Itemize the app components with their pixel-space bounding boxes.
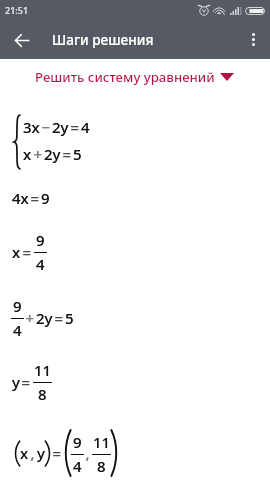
staticText: 11 xyxy=(93,432,111,452)
staticText: + xyxy=(32,144,44,164)
button[interactable]: More options xyxy=(236,22,270,56)
button[interactable]: Решить систему уравнений xyxy=(0,65,270,89)
staticText: 5 xyxy=(65,308,74,328)
staticText: 8 xyxy=(38,384,47,404)
staticText: 2y xyxy=(52,117,69,137)
staticText: x xyxy=(20,443,29,463)
staticText: = xyxy=(51,443,63,463)
staticText: 4x xyxy=(12,188,29,208)
staticText: 4 xyxy=(13,320,22,340)
staticText: , xyxy=(29,443,37,463)
staticText: + xyxy=(32,144,44,164)
staticText: Шаги решения xyxy=(52,30,154,49)
staticText: , xyxy=(29,443,37,463)
button[interactable]: Back xyxy=(5,23,39,57)
staticText: 9 xyxy=(13,296,22,316)
staticText: 2y xyxy=(36,308,53,328)
staticText: + xyxy=(24,308,36,328)
staticText: 11 xyxy=(34,360,52,380)
staticText: = xyxy=(53,308,65,328)
staticText: 5 xyxy=(73,144,82,164)
staticText: = xyxy=(69,117,81,137)
staticText: 4 xyxy=(73,456,82,476)
staticText: 9 xyxy=(36,230,45,250)
staticText: = xyxy=(69,117,81,137)
staticText: = xyxy=(53,308,65,328)
staticText: 9 xyxy=(73,432,82,452)
staticText: x xyxy=(20,443,29,463)
staticText: 4x xyxy=(12,188,29,208)
staticText: 4 xyxy=(81,117,90,137)
staticText: x xyxy=(12,242,21,262)
staticText: = xyxy=(61,144,73,164)
staticText: x xyxy=(12,242,21,262)
staticText: = xyxy=(21,242,33,262)
staticText: x xyxy=(23,144,32,164)
staticText: , xyxy=(84,443,92,463)
staticText: = xyxy=(20,372,32,392)
staticText: x xyxy=(23,144,32,164)
staticText: − xyxy=(40,117,52,137)
staticText: 11 xyxy=(34,360,52,380)
staticText: y xyxy=(37,443,45,463)
staticText: 2y xyxy=(44,144,61,164)
staticText: = xyxy=(61,144,73,164)
staticText: 8 xyxy=(38,384,47,404)
staticText: = xyxy=(20,372,32,392)
staticText: 5 xyxy=(65,308,74,328)
staticText: , xyxy=(84,443,92,463)
staticText: 9 xyxy=(41,188,50,208)
staticText: 2y xyxy=(36,308,53,328)
staticText: 9 xyxy=(41,188,50,208)
staticText: 3x xyxy=(23,117,40,137)
staticText: 3x xyxy=(23,117,40,137)
staticText: − xyxy=(40,117,52,137)
staticText: 21:51 xyxy=(5,4,29,16)
staticText: y xyxy=(37,443,45,463)
staticText: Решить систему уравнений xyxy=(35,68,215,86)
staticText: 2y xyxy=(52,117,69,137)
staticText: 4 xyxy=(36,254,45,274)
staticText: y xyxy=(12,372,20,392)
staticText: = xyxy=(29,188,41,208)
staticText: = xyxy=(29,188,41,208)
staticText: 9 xyxy=(73,432,82,452)
staticText: 9 xyxy=(13,296,22,316)
staticText: 8 xyxy=(97,456,106,476)
staticText: 4 xyxy=(13,320,22,340)
staticText: y xyxy=(12,372,20,392)
staticText: 5 xyxy=(73,144,82,164)
staticText: = xyxy=(21,242,33,262)
staticText: 9 xyxy=(36,230,45,250)
staticText: 11 xyxy=(93,432,111,452)
staticText: 2y xyxy=(44,144,61,164)
staticText: 8 xyxy=(97,456,106,476)
staticText: + xyxy=(24,308,36,328)
staticText: = xyxy=(51,443,63,463)
staticText: 4 xyxy=(81,117,90,137)
staticText: 4 xyxy=(73,456,82,476)
staticText: 4 xyxy=(36,254,45,274)
